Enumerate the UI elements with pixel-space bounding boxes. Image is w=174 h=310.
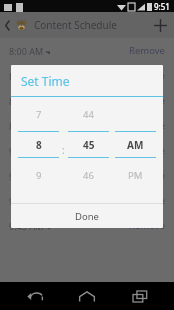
button[interactable]: 9:30 AM	[0, 188, 174, 213]
staticText: 8:45 AM	[9, 120, 44, 132]
button[interactable]: Recent apps	[122, 282, 158, 310]
staticText: 9:00 AM	[9, 145, 44, 157]
staticText: Remove	[129, 94, 165, 107]
button[interactable]: 9	[18, 158, 59, 192]
staticText: Content Schedule	[34, 18, 117, 32]
staticText: Remove	[129, 194, 165, 207]
button[interactable]: 8	[18, 132, 59, 157]
button[interactable]: Home	[69, 282, 105, 310]
staticText: 46	[83, 169, 94, 182]
staticText: 9:51	[154, 1, 170, 12]
staticText: 8	[36, 138, 42, 152]
staticText: Remove	[129, 169, 165, 182]
button[interactable]: 9:00 AM	[0, 138, 174, 163]
button[interactable]: Navigate up	[3, 13, 12, 37]
button[interactable]: PM	[115, 158, 156, 192]
staticText: Remove	[129, 69, 165, 82]
button[interactable]: 8:45 AM	[0, 113, 174, 138]
button[interactable]: 9:15 AM	[0, 163, 174, 188]
staticText: 9	[36, 169, 42, 182]
button[interactable]: 46	[68, 158, 109, 192]
staticText: AM	[127, 138, 144, 152]
staticText: 8:30 AM	[9, 95, 44, 107]
button[interactable]: 9:45 AM	[0, 213, 174, 238]
staticText: 9:15 AM	[9, 170, 44, 182]
button[interactable]: Back	[17, 282, 53, 310]
button[interactable]: 7	[18, 97, 59, 131]
staticText: 44	[83, 108, 94, 121]
button[interactable]: Done	[11, 204, 163, 228]
staticText: 8:15 AM	[9, 70, 44, 82]
staticText: :	[62, 143, 65, 157]
staticText: Remove	[129, 44, 165, 57]
staticText: PM	[128, 169, 143, 182]
button[interactable]: AM	[115, 132, 156, 157]
staticText: Remove	[129, 119, 165, 132]
staticText: Set Time	[21, 73, 70, 89]
button[interactable]: 8:15 AM	[0, 63, 174, 88]
staticText: Done	[75, 210, 99, 223]
staticText: Remove	[129, 219, 165, 232]
staticText: Remove	[129, 144, 165, 157]
button[interactable]: 8:00 AM	[0, 38, 174, 63]
staticText: 9:30 AM	[9, 195, 44, 207]
button[interactable]: Add	[147, 12, 174, 38]
staticText: 9:45 AM	[9, 220, 44, 232]
button[interactable]: 8:30 AM	[0, 88, 174, 113]
button[interactable]: 45	[68, 132, 109, 157]
staticText: 8:00 AM	[9, 45, 44, 57]
button[interactable]: 44	[68, 97, 109, 131]
staticText: 45	[83, 138, 95, 152]
staticText: 7	[36, 108, 42, 121]
